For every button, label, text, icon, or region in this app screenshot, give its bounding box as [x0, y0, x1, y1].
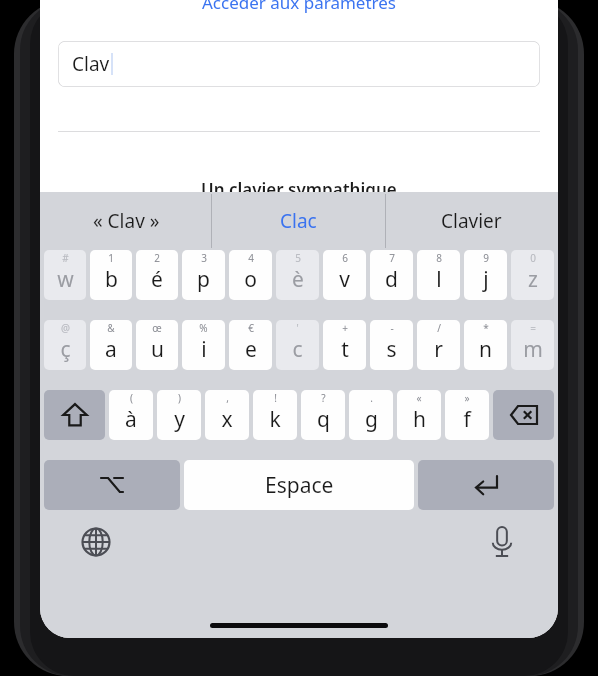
- staticText: (: [130, 391, 133, 405]
- staticText: i: [201, 335, 207, 364]
- staticText: 4: [248, 251, 254, 265]
- staticText: z: [528, 265, 538, 294]
- button[interactable]: %: [182, 320, 225, 370]
- staticText: k: [269, 405, 281, 434]
- button[interactable]: ): [157, 390, 201, 440]
- staticText: Clavier: [441, 208, 502, 234]
- button[interactable]: Clavier: [385, 192, 558, 250]
- button[interactable]: -: [370, 320, 413, 370]
- staticText: t: [341, 335, 349, 364]
- button[interactable]: &: [90, 320, 132, 370]
- staticText: «: [416, 391, 422, 405]
- staticText: =: [530, 321, 536, 335]
- staticText: q: [317, 405, 330, 434]
- staticText: 9: [483, 251, 489, 265]
- button[interactable]: 9: [464, 250, 507, 300]
- button[interactable]: +: [323, 320, 366, 370]
- staticText: b: [105, 265, 118, 294]
- staticText: ): [178, 391, 181, 405]
- button[interactable]: 1: [90, 250, 132, 300]
- staticText: w: [57, 265, 74, 294]
- staticText: à: [125, 405, 137, 434]
- button[interactable]: Return: [418, 460, 554, 510]
- staticText: %: [199, 321, 208, 335]
- staticText: *: [483, 321, 489, 335]
- button[interactable]: Option: [44, 460, 180, 510]
- staticText: Espace: [265, 471, 334, 500]
- button[interactable]: Clac: [212, 192, 385, 250]
- staticText: p: [197, 265, 210, 294]
- button[interactable]: 3: [182, 250, 225, 300]
- button[interactable]: Clav: [58, 41, 540, 87]
- button[interactable]: Shift: [44, 390, 105, 440]
- staticText: g: [365, 405, 378, 434]
- staticText: Clac: [280, 208, 317, 234]
- staticText: Clav: [72, 51, 110, 77]
- button[interactable]: 2: [136, 250, 178, 300]
- button[interactable]: «: [397, 390, 441, 440]
- staticText: s: [386, 335, 397, 364]
- staticText: &: [107, 321, 115, 335]
- button[interactable]: /: [417, 320, 460, 370]
- button[interactable]: œ: [136, 320, 178, 370]
- button[interactable]: !: [253, 390, 297, 440]
- staticText: u: [151, 335, 164, 364]
- button[interactable]: #: [44, 250, 86, 300]
- button[interactable]: 7: [370, 250, 413, 300]
- button[interactable]: 5: [276, 250, 319, 300]
- staticText: a: [105, 335, 117, 364]
- staticText: 1: [108, 251, 114, 265]
- staticText: -: [390, 321, 394, 335]
- staticText: @: [61, 321, 70, 335]
- staticText: y: [174, 405, 185, 434]
- staticText: 6: [342, 251, 348, 265]
- button[interactable]: Espace: [184, 460, 414, 510]
- staticText: j: [483, 265, 489, 294]
- button[interactable]: Change keyboard: [72, 518, 120, 566]
- staticText: ': [296, 321, 299, 335]
- staticText: é: [151, 265, 163, 294]
- staticText: d: [385, 265, 398, 294]
- button[interactable]: *: [464, 320, 507, 370]
- staticText: Accéder aux paramètres: [202, 0, 396, 14]
- button[interactable]: Backspace: [493, 390, 554, 440]
- staticText: .: [370, 391, 373, 405]
- staticText: €: [248, 321, 254, 335]
- staticText: o: [244, 265, 257, 294]
- button[interactable]: 8: [417, 250, 460, 300]
- staticText: 5: [295, 251, 301, 265]
- button[interactable]: Dictation: [478, 518, 526, 566]
- staticText: ?: [321, 391, 326, 405]
- staticText: v: [339, 265, 350, 294]
- button[interactable]: =: [511, 320, 554, 370]
- button[interactable]: @: [44, 320, 86, 370]
- staticText: f: [463, 405, 471, 434]
- staticText: 8: [436, 251, 442, 265]
- staticText: r: [434, 335, 443, 364]
- staticText: 0: [530, 251, 536, 265]
- staticText: ,: [226, 391, 229, 405]
- button[interactable]: €: [229, 320, 272, 370]
- staticText: n: [479, 335, 492, 364]
- button[interactable]: »: [445, 390, 489, 440]
- staticText: +: [342, 321, 348, 335]
- button[interactable]: .: [349, 390, 393, 440]
- button[interactable]: ,: [205, 390, 249, 440]
- staticText: »: [464, 391, 470, 405]
- button[interactable]: ?: [301, 390, 345, 440]
- button[interactable]: 0: [511, 250, 554, 300]
- staticText: 3: [201, 251, 207, 265]
- button[interactable]: (: [109, 390, 153, 440]
- staticText: !: [274, 391, 277, 405]
- button[interactable]: ': [276, 320, 319, 370]
- button[interactable]: 4: [229, 250, 272, 300]
- staticText: h: [413, 405, 426, 434]
- staticText: œ: [152, 321, 162, 335]
- button[interactable]: 6: [323, 250, 366, 300]
- staticText: m: [523, 335, 543, 364]
- staticText: Un clavier sympathique: [201, 178, 397, 201]
- staticText: « Clav »: [93, 208, 160, 234]
- staticText: e: [245, 335, 257, 364]
- staticText: x: [221, 405, 233, 434]
- button[interactable]: « Clav »: [40, 192, 212, 250]
